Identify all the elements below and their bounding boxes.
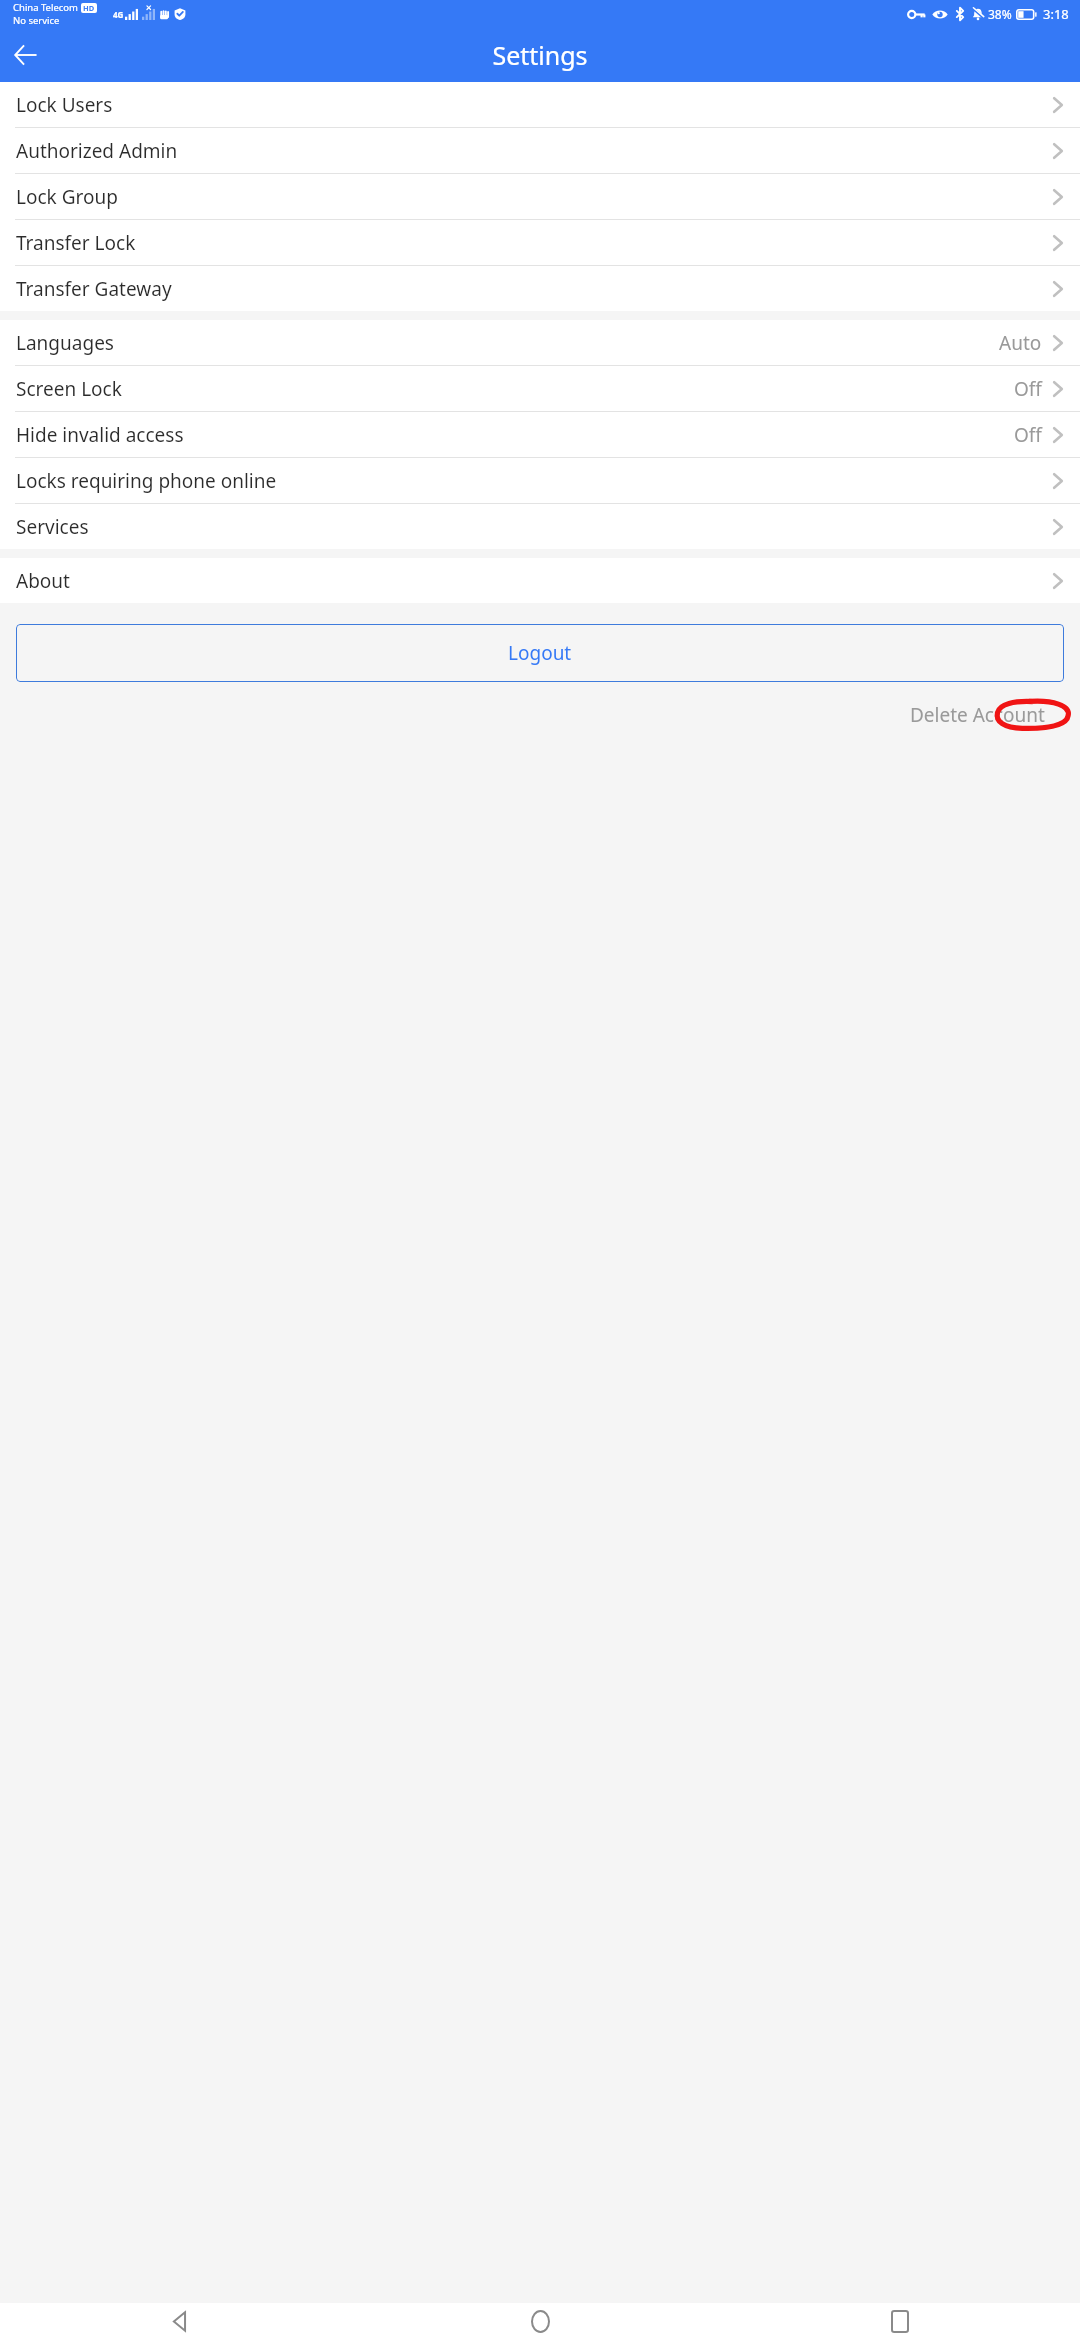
button[interactable]: Services bbox=[0, 504, 1080, 549]
button[interactable]: Delete Account bbox=[902, 692, 1053, 738]
staticText: Services bbox=[16, 514, 1052, 540]
staticText: No service bbox=[13, 14, 60, 27]
staticText: Auto bbox=[999, 330, 1042, 356]
button[interactable]: Logout bbox=[16, 624, 1064, 682]
button[interactable]: Home bbox=[360, 2303, 720, 2340]
button[interactable]: Back bbox=[0, 29, 52, 81]
button[interactable]: About bbox=[0, 558, 1080, 603]
staticText: HD bbox=[83, 3, 95, 13]
button[interactable]: Lock Users bbox=[0, 82, 1080, 127]
staticText: Locks requiring phone online bbox=[16, 468, 1052, 494]
button[interactable]: Locks requiring phone online bbox=[0, 458, 1080, 503]
staticText: Logout bbox=[508, 640, 572, 666]
staticText: Transfer Gateway bbox=[16, 276, 1052, 302]
button[interactable]: Lock Group bbox=[0, 174, 1080, 219]
staticText: Languages bbox=[16, 330, 999, 356]
staticText: Authorized Admin bbox=[16, 138, 1052, 164]
staticText: About bbox=[16, 568, 1052, 594]
staticText: China Telecom bbox=[13, 1, 78, 14]
staticText: Settings bbox=[492, 38, 588, 72]
button[interactable]: Transfer Gateway bbox=[0, 266, 1080, 311]
staticText: Lock Group bbox=[16, 184, 1052, 210]
staticText: 38% bbox=[988, 6, 1012, 22]
staticText: Screen Lock bbox=[16, 376, 1014, 402]
button[interactable]: Transfer Lock bbox=[0, 220, 1080, 265]
staticText: 3:18 bbox=[1043, 5, 1069, 23]
button[interactable]: Screen Lock bbox=[0, 366, 1080, 411]
staticText: Lock Users bbox=[16, 92, 1052, 118]
button[interactable]: Hide invalid access bbox=[0, 412, 1080, 457]
staticText: 4G bbox=[113, 9, 124, 20]
button[interactable]: Authorized Admin bbox=[0, 128, 1080, 173]
staticText: Transfer Lock bbox=[16, 230, 1052, 256]
button[interactable]: Back bbox=[0, 2303, 360, 2340]
button[interactable]: Recent apps bbox=[720, 2303, 1080, 2340]
staticText: Off bbox=[1014, 376, 1042, 402]
staticText: Hide invalid access bbox=[16, 422, 1014, 448]
staticText: Delete Account bbox=[910, 702, 1045, 728]
staticText: Off bbox=[1014, 422, 1042, 448]
button[interactable]: Languages bbox=[0, 320, 1080, 365]
